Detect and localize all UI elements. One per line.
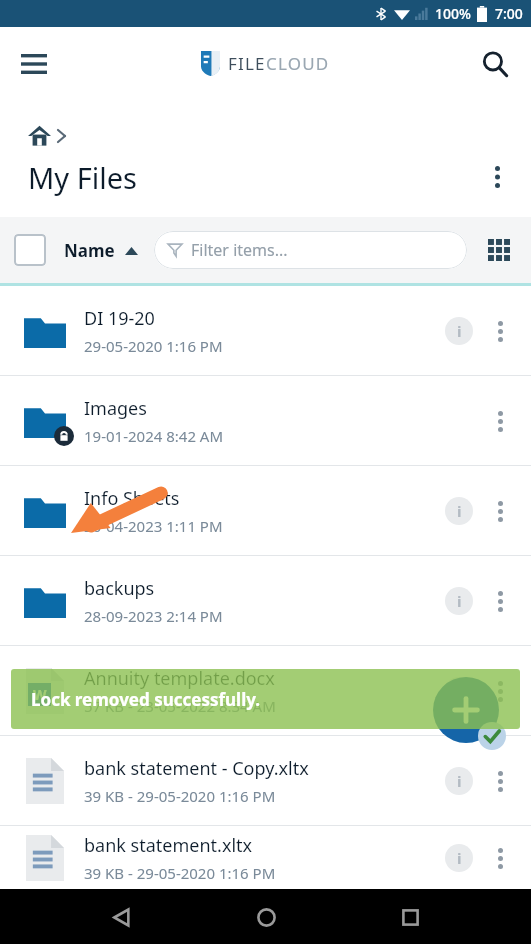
- button[interactable]: DI 19-20: [0, 286, 531, 375]
- button[interactable]: Info: [445, 677, 473, 705]
- button[interactable]: W: [0, 646, 531, 735]
- button[interactable]: Info: [445, 497, 473, 525]
- button[interactable]: Item options: [481, 402, 519, 440]
- button[interactable]: Name: [64, 239, 138, 262]
- button[interactable]: Menu: [12, 42, 56, 86]
- button[interactable]: Grid view: [481, 232, 517, 268]
- button[interactable]: backups: [0, 556, 531, 645]
- staticText: FILE: [228, 52, 266, 75]
- staticText: CLOUD: [266, 52, 330, 75]
- button[interactable]: Info Sheets: [0, 466, 531, 555]
- button[interactable]: Item options: [481, 839, 519, 877]
- staticText: 28-09-2023 2:14 PM: [84, 606, 223, 626]
- button[interactable]: Item options: [481, 582, 519, 620]
- staticText: W: [33, 685, 47, 704]
- button[interactable]: Info: [445, 317, 473, 345]
- staticText: backups: [84, 576, 155, 601]
- staticText: bank statement.xltx: [84, 833, 253, 858]
- button[interactable]: Item options: [481, 672, 519, 710]
- staticText: i: [457, 321, 462, 341]
- button[interactable]: Select all: [14, 234, 46, 266]
- button[interactable]: Info: [445, 844, 473, 872]
- button[interactable]: Info: [445, 767, 473, 795]
- button[interactable]: Search: [473, 42, 517, 86]
- staticText: 19-01-2024 8:42 AM: [84, 426, 224, 446]
- staticText: 100%: [435, 4, 471, 23]
- button[interactable]: Filter items...: [154, 231, 467, 269]
- staticText: Info Sheets: [84, 486, 180, 511]
- staticText: Annuity template.docx: [84, 666, 275, 691]
- staticText: Images: [84, 396, 147, 421]
- staticText: 57 KB - 23-05-2022 8:34 AM: [84, 696, 276, 716]
- staticText: i: [457, 771, 462, 791]
- staticText: i: [457, 848, 462, 868]
- staticText: Lock removed successfully.: [31, 688, 261, 711]
- button[interactable]: Info: [445, 587, 473, 615]
- button[interactable]: Add: [433, 677, 499, 743]
- button[interactable]: Images: [0, 376, 531, 465]
- staticText: bank statement - Copy.xltx: [84, 756, 309, 781]
- button[interactable]: Lock removed successfully.: [11, 669, 520, 729]
- staticText: Filter items...: [191, 239, 288, 261]
- staticText: 29-05-2020 1:16 PM: [84, 336, 223, 356]
- staticText: 7:00: [495, 4, 523, 23]
- button[interactable]: Home: [28, 124, 51, 147]
- staticText: i: [457, 591, 462, 611]
- button[interactable]: Home: [242, 893, 290, 941]
- staticText: 39 KB - 29-05-2020 1:16 PM: [84, 786, 276, 806]
- staticText: 26-04-2023 1:11 PM: [84, 516, 223, 536]
- button[interactable]: Item options: [481, 312, 519, 350]
- button[interactable]: bank statement.xltx: [0, 826, 531, 889]
- button[interactable]: Back: [97, 893, 145, 941]
- staticText: My Files: [28, 158, 137, 197]
- staticText: Name: [64, 239, 115, 262]
- button[interactable]: Item options: [481, 762, 519, 800]
- staticText: DI 19-20: [84, 306, 155, 331]
- button[interactable]: More options: [477, 157, 517, 197]
- staticText: 39 KB - 29-05-2020 1:16 PM: [84, 863, 276, 883]
- button[interactable]: Recents: [386, 893, 434, 941]
- button[interactable]: bank statement - Copy.xltx: [0, 736, 531, 825]
- button[interactable]: Item options: [481, 492, 519, 530]
- staticText: i: [457, 501, 462, 521]
